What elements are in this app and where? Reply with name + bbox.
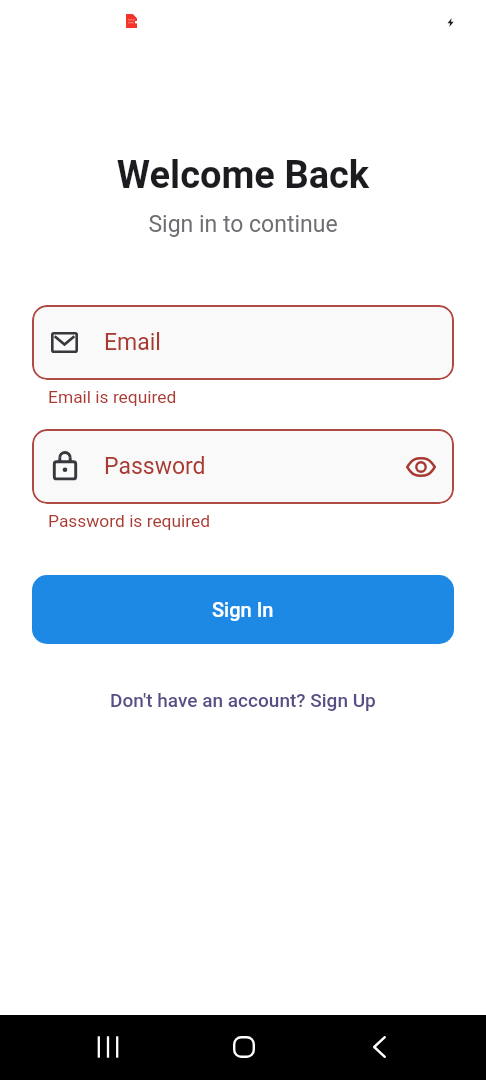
button[interactable]: Password: [32, 429, 454, 504]
staticText: Email is required: [48, 387, 177, 407]
staticText: Sign In: [212, 598, 274, 621]
staticText: Password: [104, 453, 206, 480]
button[interactable]: Home: [220, 1014, 268, 1079]
staticText: Welcome Back: [0, 153, 486, 198]
staticText: Email: [104, 329, 161, 356]
button[interactable]: Recent apps: [84, 1014, 132, 1079]
staticText: Password is required: [48, 511, 211, 531]
button[interactable]: Don't have an account? Sign Up: [100, 679, 386, 721]
button[interactable]: Email: [32, 305, 454, 380]
staticText: Sign in to continue: [0, 211, 486, 238]
button[interactable]: Sign In: [32, 575, 454, 644]
button[interactable]: Show password: [402, 448, 440, 486]
button[interactable]: Back: [355, 1014, 403, 1079]
